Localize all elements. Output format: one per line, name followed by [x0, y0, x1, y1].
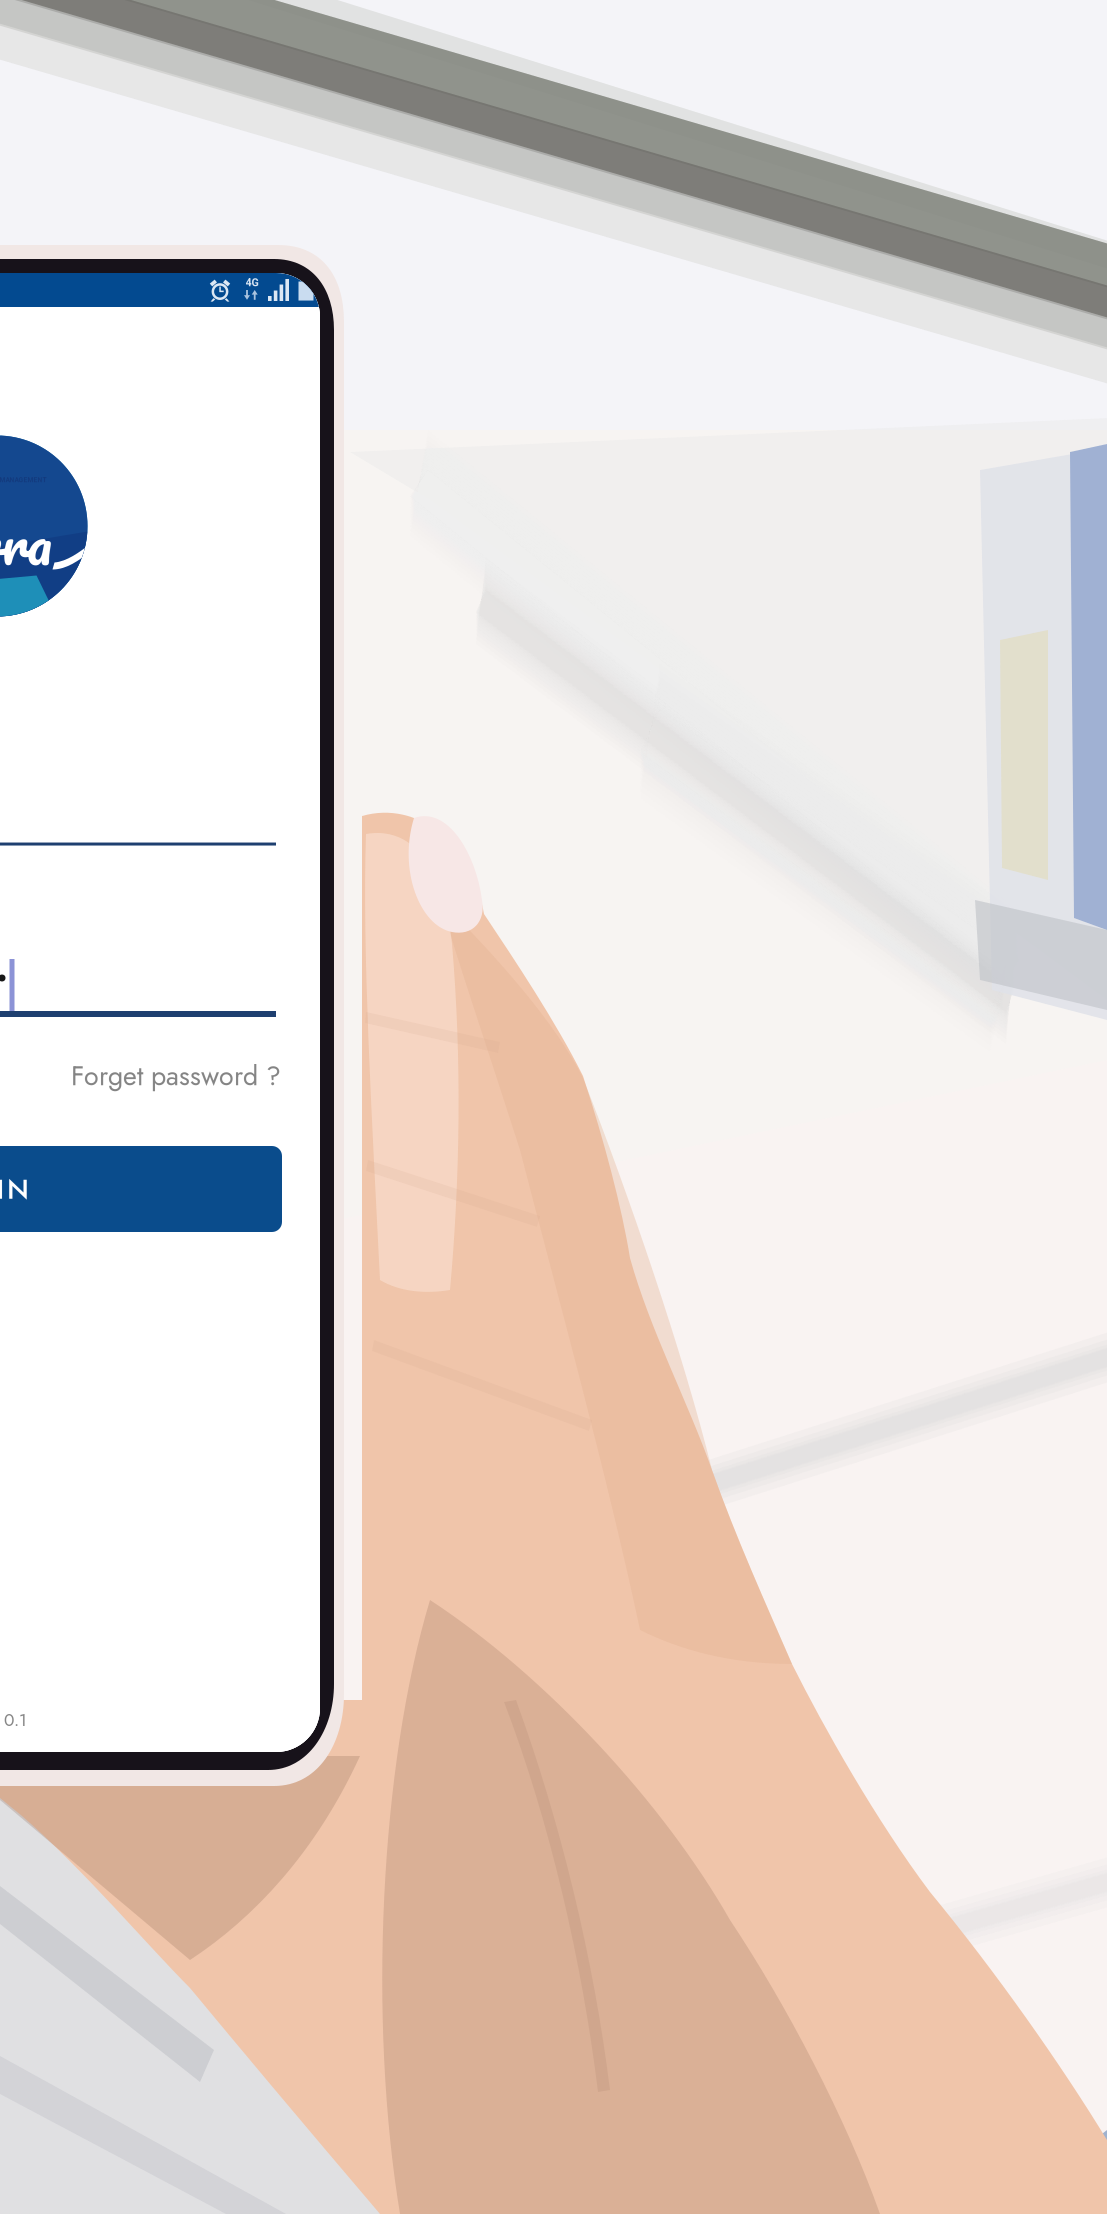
staticText: Forget password ?	[71, 1057, 281, 1095]
staticText: vra	[0, 492, 52, 591]
button[interactable]	[0, 741, 276, 845]
button[interactable]: Forget password ?	[21, 1054, 281, 1098]
button[interactable]	[0, 913, 276, 1017]
staticText: 4G	[245, 276, 258, 289]
staticText: BANK ASSET MANAGEMENT	[0, 476, 46, 484]
staticText: Version 0.1	[0, 1707, 27, 1732]
button[interactable]: LOGIN	[0, 1146, 282, 1232]
staticText: LOGIN	[0, 1169, 29, 1209]
